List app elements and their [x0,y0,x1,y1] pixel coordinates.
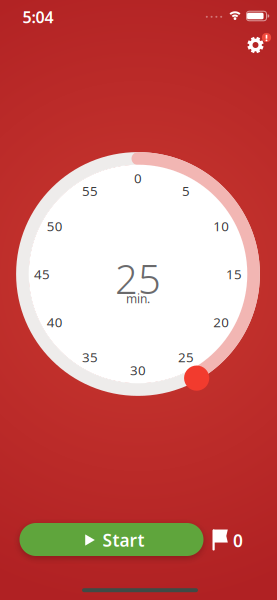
button[interactable]: Start [0,0,277,600]
staticText: 20 [213,313,229,331]
staticText: 55 [82,182,98,200]
staticText: 50 [47,217,63,235]
staticText: 15 [226,265,242,283]
button[interactable]: 0 [0,0,277,600]
staticText: 40 [47,313,63,331]
staticText: 0 [233,529,243,552]
staticText: min. [126,290,150,306]
staticText: 5:04 [22,6,53,28]
staticText: 45 [34,265,50,283]
staticText: 5 [182,182,190,200]
staticText: 0 [134,169,142,187]
button[interactable] [0,0,277,600]
staticText: 30 [130,361,146,379]
staticText: 35 [82,348,98,366]
staticText: 25 [178,348,194,366]
staticText: 10 [213,217,229,235]
staticText: Start [102,528,144,551]
staticText: 25 [115,252,161,305]
